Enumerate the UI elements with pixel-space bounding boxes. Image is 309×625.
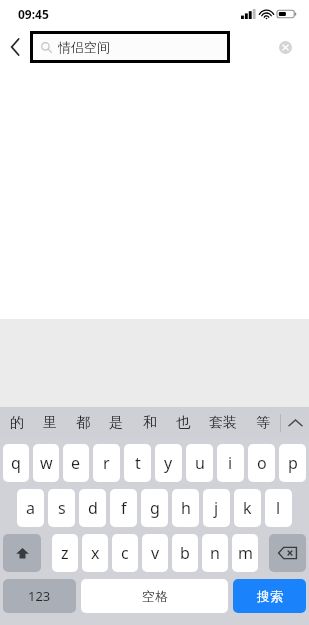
staticText: i (228, 452, 233, 474)
staticText: 空格 (142, 588, 168, 604)
staticText: k (243, 497, 252, 519)
button[interactable]: i (217, 444, 244, 482)
button[interactable]: o (248, 444, 275, 482)
staticText: r (103, 452, 110, 474)
button[interactable]: l (265, 489, 292, 527)
button[interactable]: m (232, 534, 258, 572)
button[interactable]: 里 (43, 414, 57, 432)
button[interactable]: 也 (176, 414, 190, 432)
staticText: 套装 (209, 414, 237, 432)
staticText: s (58, 497, 66, 519)
button[interactable]: b (172, 534, 198, 572)
button[interactable]: r (93, 444, 120, 482)
staticText: a (26, 497, 35, 519)
staticText: 也 (176, 414, 190, 432)
button[interactable]: a (17, 489, 44, 527)
staticText: b (180, 542, 190, 564)
staticText: j (214, 497, 219, 519)
staticText: 的 (10, 414, 24, 432)
button[interactable]: 的 (10, 414, 24, 432)
button[interactable]: y (155, 444, 182, 482)
button[interactable]: 123 (3, 579, 76, 613)
button[interactable]: k (234, 489, 261, 527)
button[interactable]: h (172, 489, 199, 527)
staticText: v (151, 542, 160, 564)
staticText: 情侣空间 (58, 39, 110, 55)
button[interactable]: Back (0, 28, 30, 66)
button[interactable]: z (52, 534, 78, 572)
staticText: c (121, 542, 129, 564)
button[interactable]: w (33, 444, 59, 482)
button[interactable]: Expand candidates (281, 407, 309, 439)
button[interactable]: v (142, 534, 168, 572)
staticText: w (40, 452, 53, 474)
button[interactable]: u (186, 444, 213, 482)
staticText: y (164, 452, 173, 474)
button[interactable]: s (48, 489, 75, 527)
button[interactable]: e (63, 444, 89, 482)
button[interactable]: j (203, 489, 230, 527)
button[interactable]: 等 (256, 414, 270, 432)
button[interactable]: n (202, 534, 228, 572)
staticText: 09:45 (18, 6, 49, 22)
staticText: m (238, 542, 253, 564)
button[interactable]: 是 (109, 414, 123, 432)
button[interactable]: q (3, 444, 29, 482)
staticText: o (257, 452, 267, 474)
staticText: e (71, 452, 81, 474)
staticText: x (91, 542, 100, 564)
button[interactable]: Clear (274, 36, 296, 58)
staticText: h (181, 497, 191, 519)
staticText: q (11, 452, 21, 474)
staticText: 等 (256, 414, 270, 432)
staticText: t (135, 452, 141, 474)
button[interactable]: g (141, 489, 168, 527)
button[interactable]: 搜索 (233, 579, 306, 613)
button[interactable]: 空格 (81, 579, 228, 613)
button[interactable]: Shift (3, 534, 41, 572)
button[interactable]: Backspace (269, 534, 306, 572)
button[interactable]: p (279, 444, 306, 482)
staticText: l (276, 497, 281, 519)
staticText: z (61, 542, 69, 564)
button[interactable]: 情侣空间 (33, 34, 227, 60)
staticText: 是 (109, 414, 123, 432)
staticText: f (121, 497, 127, 519)
staticText: g (150, 497, 160, 519)
button[interactable]: 和 (143, 414, 157, 432)
staticText: p (288, 452, 298, 474)
button[interactable]: 都 (76, 414, 90, 432)
staticText: d (88, 497, 98, 519)
staticText: u (195, 452, 205, 474)
staticText: 和 (143, 414, 157, 432)
staticText: 123 (28, 587, 51, 605)
button[interactable]: 套装 (209, 414, 237, 432)
button[interactable]: c (112, 534, 138, 572)
button[interactable]: f (110, 489, 137, 527)
button[interactable]: d (79, 489, 106, 527)
button[interactable]: x (82, 534, 108, 572)
staticText: n (210, 542, 220, 564)
staticText: 都 (76, 414, 90, 432)
staticText: 搜索 (257, 588, 283, 604)
staticText: 里 (43, 414, 57, 432)
button[interactable]: t (124, 444, 151, 482)
